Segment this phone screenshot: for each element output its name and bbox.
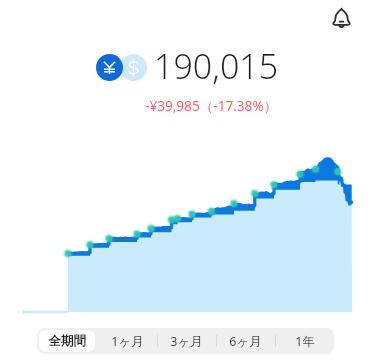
button[interactable]: 3ヶ月 [157,328,216,354]
staticText: 1ヶ月 [111,333,144,350]
button[interactable]: 1ヶ月 [97,328,157,354]
button[interactable]: 1年 [275,328,334,354]
staticText: 1年 [295,333,315,350]
button[interactable]: USD [120,54,147,81]
button[interactable]: JPY [96,54,123,81]
staticText: 全期間 [48,333,86,349]
button[interactable]: 全期間 [37,328,97,354]
staticText: -¥39,985（-17.38%） [145,96,278,115]
staticText: 190,015 [154,43,279,89]
staticText: 6ヶ月 [229,333,262,350]
button[interactable]: 6ヶ月 [216,328,275,354]
button[interactable]: Notifications [324,0,358,34]
staticText: 3ヶ月 [170,333,203,350]
